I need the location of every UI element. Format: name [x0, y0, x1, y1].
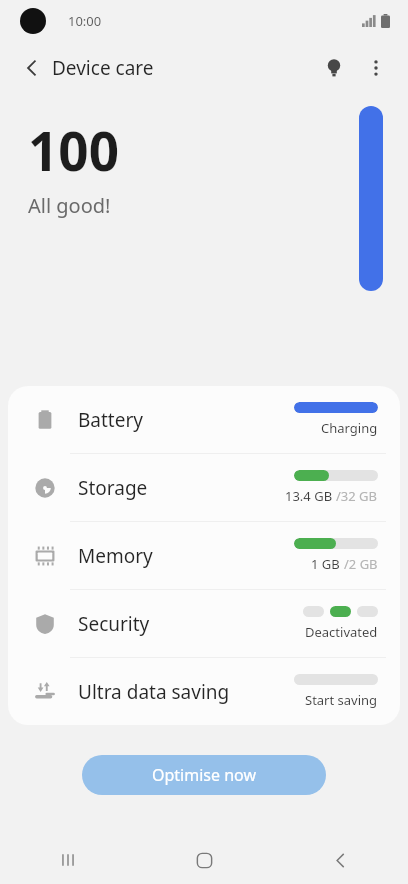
button[interactable]: Recent apps [0, 836, 136, 884]
button[interactable]: Storage [8, 454, 400, 521]
staticText: Optimise now [152, 764, 257, 786]
button[interactable]: Battery [8, 386, 400, 453]
button[interactable]: More options [356, 48, 396, 88]
staticText: 100 [28, 114, 119, 186]
button[interactable]: Home [136, 836, 272, 884]
staticText: /2 GB [344, 555, 378, 573]
button[interactable]: Memory [8, 522, 400, 589]
staticText: Storage [78, 475, 148, 501]
staticText: Start saving [305, 691, 378, 709]
button[interactable]: Optimise now [82, 755, 326, 795]
staticText: 1 GB [311, 555, 344, 573]
staticText: 10:00 [68, 12, 102, 30]
staticText: Battery [78, 407, 143, 433]
button[interactable]: Security [8, 590, 400, 657]
staticText: Ultra data saving [78, 679, 230, 705]
staticText: Charging [321, 419, 378, 437]
button[interactable]: Back [14, 50, 50, 86]
staticText: Memory [78, 543, 153, 569]
staticText: Device care [52, 55, 154, 81]
staticText: 13.4 GB [285, 487, 336, 505]
button[interactable]: Back [272, 836, 408, 884]
button[interactable]: Ultra data saving [8, 658, 400, 725]
button[interactable]: Tips [314, 48, 354, 88]
staticText: Deactivated [305, 623, 378, 641]
staticText: Security [78, 611, 150, 637]
staticText: /32 GB [336, 487, 378, 505]
staticText: All good! [28, 192, 111, 219]
